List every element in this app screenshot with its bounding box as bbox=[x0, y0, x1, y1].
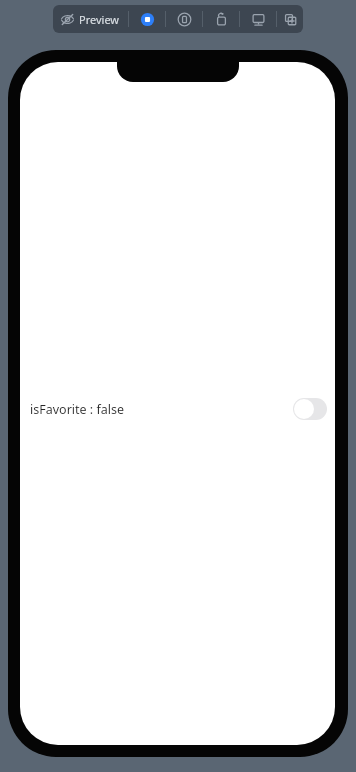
staticText: Preview bbox=[79, 12, 120, 27]
staticText: isFavorite : false bbox=[30, 401, 125, 418]
button[interactable]: Interactive preview bbox=[129, 5, 165, 33]
button[interactable]: Rerun preview bbox=[203, 5, 239, 33]
button[interactable]: Toggle favorite bbox=[293, 398, 327, 420]
button[interactable]: Open in new window bbox=[240, 5, 276, 33]
button[interactable]: Run preview bbox=[166, 5, 202, 33]
button[interactable]: Add preview bbox=[277, 5, 303, 33]
button[interactable]: Preview bbox=[53, 5, 128, 33]
